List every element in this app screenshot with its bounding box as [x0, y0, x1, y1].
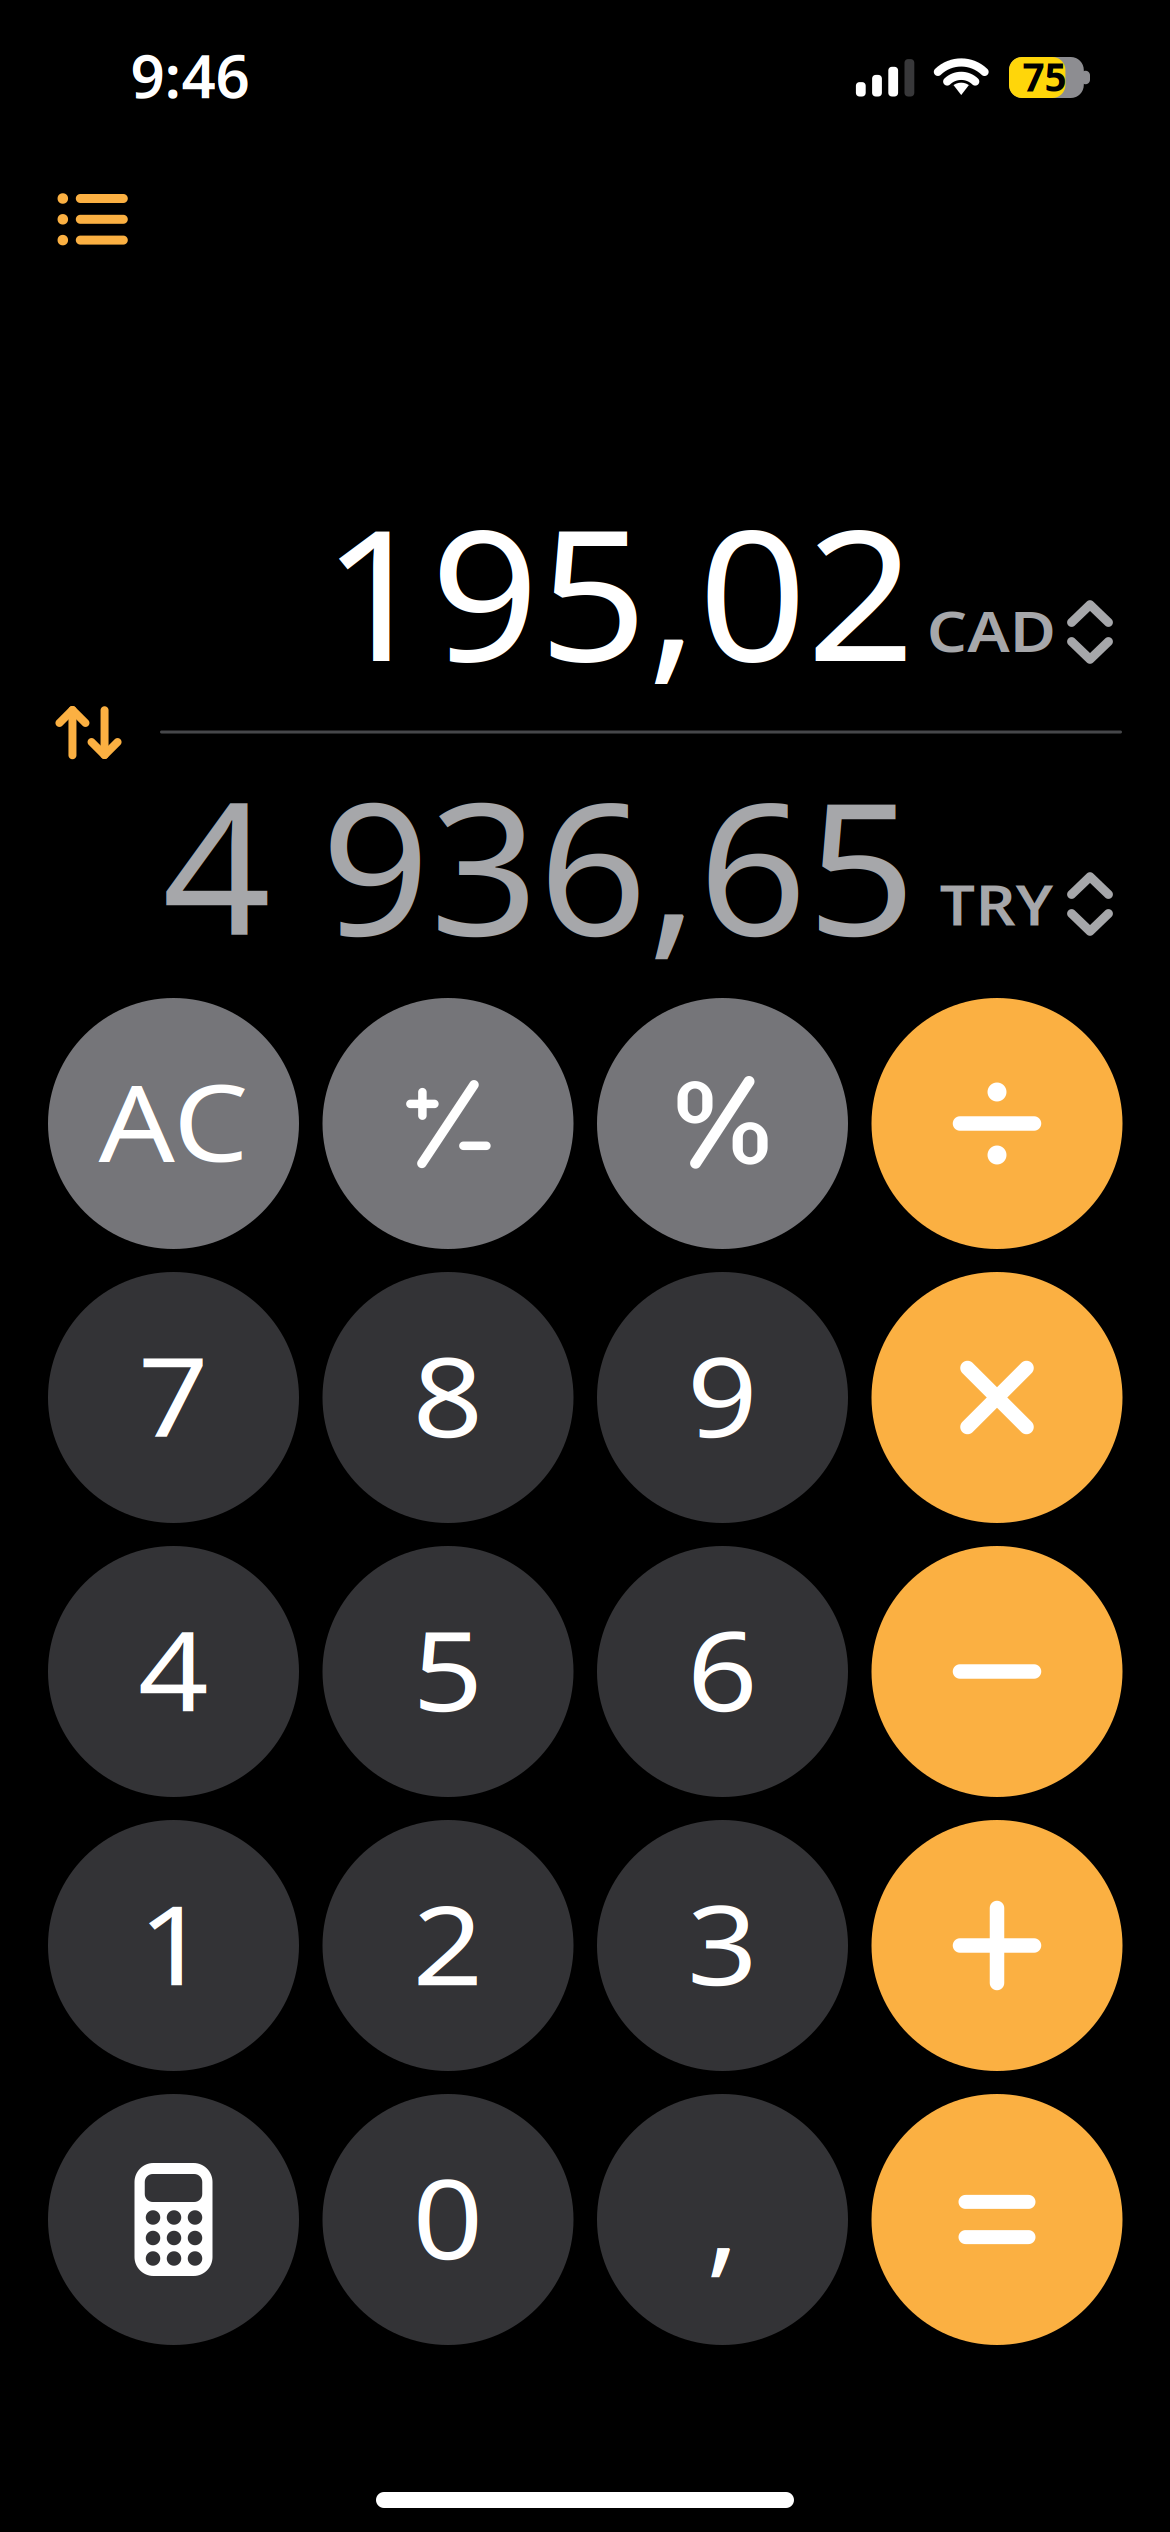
staticText: 4 936,65: [161, 738, 916, 991]
staticText: CAD: [927, 589, 1055, 672]
button[interactable]: 9: [597, 1272, 848, 1523]
staticText: 7: [141, 1319, 206, 1470]
button[interactable]: History: [18, 154, 168, 284]
button[interactable]: 7: [48, 1272, 299, 1523]
button[interactable]: 0: [322, 2094, 573, 2345]
button[interactable]: Calculator: [48, 2094, 299, 2345]
button[interactable]: Plus: [871, 1820, 1122, 2071]
button[interactable]: 6: [597, 1546, 848, 1797]
button[interactable]: Divide: [871, 998, 1122, 1249]
staticText: 5: [415, 1593, 480, 1744]
staticText: 3: [690, 1867, 755, 2018]
button[interactable]: Plus minus: [322, 998, 573, 1249]
staticText: 4: [141, 1593, 206, 1744]
button[interactable]: 1: [48, 1820, 299, 2071]
staticText: TRY: [939, 862, 1053, 946]
button[interactable]: ,: [597, 2094, 848, 2345]
staticText: AC: [100, 1043, 247, 1198]
button[interactable]: Percent: [597, 998, 848, 1249]
staticText: 0: [415, 2141, 480, 2292]
button[interactable]: 3: [597, 1820, 848, 2071]
button[interactable]: AC: [48, 998, 299, 1249]
staticText: 75: [1023, 51, 1067, 102]
button[interactable]: 5: [322, 1546, 573, 1797]
button[interactable]: 8: [322, 1272, 573, 1523]
staticText: 8: [415, 1319, 480, 1470]
staticText: 2: [415, 1867, 480, 2018]
staticText: 9:46: [130, 35, 249, 115]
staticText: 6: [690, 1593, 755, 1744]
button[interactable]: Change target currency: [1067, 872, 1113, 936]
staticText: ,: [707, 2141, 737, 2291]
button[interactable]: Minus: [871, 1546, 1122, 1797]
button[interactable]: Equals: [871, 2094, 1122, 2345]
button[interactable]: Swap currencies: [33, 682, 143, 782]
button[interactable]: 2: [322, 1820, 573, 2071]
staticText: 195,02: [323, 465, 914, 716]
button[interactable]: Multiply: [871, 1272, 1122, 1523]
staticText: 1: [141, 1867, 206, 2018]
staticText: 9: [690, 1319, 755, 1470]
button[interactable]: Change source currency: [1067, 600, 1113, 664]
button[interactable]: 4: [48, 1546, 299, 1797]
